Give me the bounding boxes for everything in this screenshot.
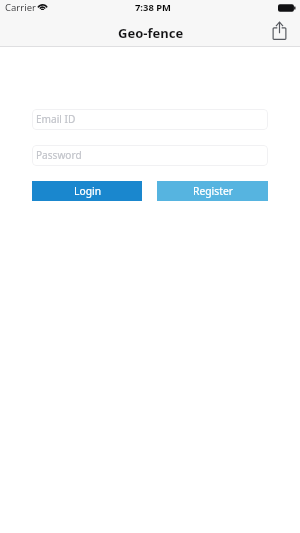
staticText: Carrier [5,1,36,14]
button[interactable]: Email ID [32,109,268,130]
button[interactable]: Share [267,18,291,42]
staticText: 7:38 PM [135,1,171,14]
button[interactable]: Password [32,145,268,166]
staticText: Email ID [36,112,76,126]
staticText: Geo-fence [118,24,184,42]
button[interactable]: Register [157,181,268,201]
staticText: Register [193,184,233,198]
staticText: Login [74,184,101,198]
button[interactable]: Login [32,181,142,201]
staticText: Password [36,148,82,162]
